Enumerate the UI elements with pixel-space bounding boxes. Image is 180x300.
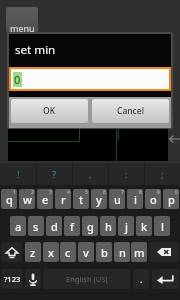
staticText: x [48,245,54,260]
button[interactable]: menu [6,7,38,33]
staticText: d [51,219,58,234]
staticText: OK [43,105,56,117]
button[interactable]: m [131,242,147,262]
staticText: w [23,192,32,207]
staticText: j [125,219,128,234]
button[interactable]: b [96,242,112,262]
staticText: 7 [121,189,124,196]
button[interactable]: f [64,216,80,236]
button[interactable]: p [163,189,179,209]
staticText: g [87,219,94,234]
staticText: 1 [13,189,16,196]
staticText: , [89,168,92,181]
staticText: 0 [175,189,178,196]
staticText: l [161,219,164,234]
staticText: Cancel [117,105,144,117]
staticText: 3 [49,189,52,196]
button[interactable]: r [55,189,71,209]
staticText: c [65,245,71,260]
button[interactable]: x [43,242,59,262]
staticText: n [119,245,126,260]
staticText: r [61,192,66,207]
button[interactable]: OK [11,99,88,123]
button[interactable]: y [91,189,107,209]
button[interactable]: q [1,189,17,209]
staticText: m [134,245,145,260]
button[interactable]: u [109,189,125,209]
button[interactable]: v [78,242,94,262]
staticText: p [168,192,175,207]
staticText: b [101,245,108,260]
staticText: z [30,245,36,260]
staticText: 4 [67,189,70,196]
staticText: English (US) [66,274,108,284]
button[interactable]: k [136,216,152,236]
button[interactable]: Cancel [92,99,169,123]
staticText: ?123 [4,274,21,284]
button[interactable]: c [60,242,76,262]
staticText: 2 [31,189,34,196]
button[interactable]: Shift [1,242,22,262]
staticText: a [15,219,22,234]
staticText: s [33,219,39,234]
staticText: t [79,192,84,207]
staticText: 9 [157,189,160,196]
button[interactable]: h [100,216,116,236]
button[interactable]: : [108,163,144,185]
staticText: ; [161,168,164,181]
button[interactable]: s [28,216,44,236]
button[interactable]: e [37,189,53,209]
staticText: 0 [14,72,21,87]
button[interactable]: l [154,216,170,236]
button[interactable]: i [127,189,143,209]
staticText: q [6,192,13,207]
button[interactable]: Delete [149,242,179,262]
staticText: o [150,192,157,207]
staticText: y [96,192,102,207]
button[interactable]: t [73,189,89,209]
staticText: k [141,219,148,234]
button[interactable]: English (US) [43,269,130,289]
staticText: 5 [85,189,88,196]
staticText: e [42,192,49,207]
button[interactable]: . [133,269,149,289]
button[interactable]: g [82,216,98,236]
staticText: . [140,273,143,285]
button[interactable]: Voice input [25,269,41,289]
staticText: f [70,219,74,234]
staticText: ? [52,168,57,181]
staticText: v [83,245,89,260]
button[interactable]: j [118,216,134,236]
staticText: 6 [103,189,106,196]
button[interactable]: , [72,163,108,185]
button[interactable]: d [46,216,62,236]
button[interactable]: ; [144,163,180,185]
button[interactable]: ?123 [1,269,23,289]
button[interactable]: Back [168,132,180,146]
staticText: h [105,219,112,234]
staticText: ! [17,168,20,181]
button[interactable]: a [10,216,26,236]
button[interactable]: Enter [152,269,179,289]
button[interactable]: n [114,242,130,262]
staticText: menu [10,22,35,33]
button[interactable]: w [19,189,35,209]
staticText: : [125,168,128,181]
staticText: set min [15,42,56,58]
staticText: i [134,192,137,207]
button[interactable]: o [145,189,161,209]
button[interactable]: ! [0,163,36,185]
staticText: 8 [139,189,142,196]
staticText: u [114,192,121,207]
button[interactable]: z [25,242,41,262]
button[interactable]: ? [36,163,72,185]
